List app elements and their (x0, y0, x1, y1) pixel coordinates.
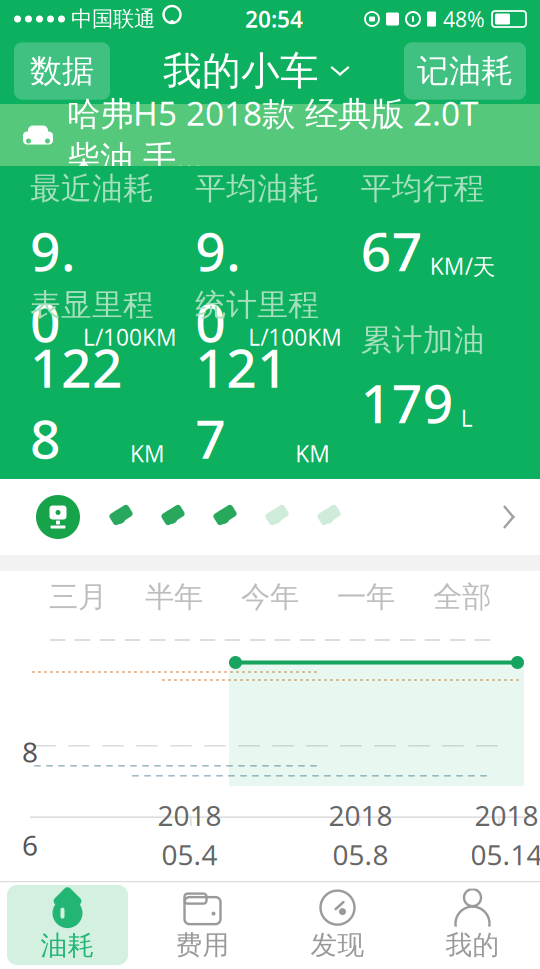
staticText: 半年 (145, 579, 203, 615)
staticText: 最近油耗 (30, 170, 154, 207)
staticText: 8 (22, 733, 38, 770)
staticText: 48% (443, 5, 485, 33)
staticText: 我的 (445, 929, 499, 961)
staticText: 05.4 (161, 836, 217, 873)
staticText: KM/天 (430, 251, 496, 281)
staticText: 67 (361, 215, 423, 286)
staticText: 2018 (328, 797, 392, 834)
staticText: 6 (22, 826, 38, 863)
staticText: 累计加油 (361, 321, 485, 359)
staticText: 平均油耗 (195, 170, 319, 207)
staticText: L/100KM (248, 322, 342, 352)
staticText: 2018 (157, 797, 221, 834)
staticText: 全部 (433, 579, 491, 615)
button[interactable]: 哈弗H5 2018款 经典版 2.0T 柴油 手… (0, 104, 540, 166)
staticText: 9.0 (195, 215, 241, 357)
staticText: 中国联通 (71, 6, 155, 32)
button[interactable]: 我的小车 (163, 47, 351, 95)
button[interactable]: 发现 (270, 885, 405, 965)
staticText: 油耗 (40, 929, 94, 962)
button[interactable] (0, 479, 540, 555)
staticText: 05.8 (332, 836, 388, 873)
button[interactable]: 半年 (126, 571, 222, 623)
staticText: 一年 (337, 579, 395, 615)
button[interactable]: 一年 (318, 571, 414, 623)
staticText: L/100KM (83, 322, 177, 352)
staticText: 1228 (30, 332, 123, 473)
button[interactable]: 数据 (14, 42, 110, 100)
staticText: 统计里程 (195, 286, 319, 324)
staticText: 今年 (241, 579, 299, 615)
staticText: 哈弗H5 2018款 经典版 2.0T 柴油 手… (67, 91, 479, 179)
button[interactable]: 油耗 (0, 881, 135, 969)
button[interactable]: 今年 (222, 571, 318, 623)
staticText: L (461, 403, 473, 433)
button[interactable]: 全部 (414, 571, 510, 623)
staticText: 2018 (474, 797, 538, 834)
staticText: 三月 (49, 579, 107, 615)
button[interactable]: 记油耗 (404, 42, 526, 100)
staticText: 1217 (195, 332, 288, 473)
staticText: 平均行程 (361, 170, 485, 207)
staticText: 05.14 (470, 836, 540, 873)
button[interactable]: 三月 (30, 571, 126, 623)
staticText: 179 (361, 367, 454, 438)
button[interactable]: 我的 (405, 885, 540, 965)
staticText: 费用 (175, 929, 229, 961)
staticText: KM (295, 438, 330, 468)
staticText: 20:54 (245, 4, 303, 34)
staticText: 表显里程 (30, 286, 154, 324)
staticText: KM (130, 438, 165, 468)
staticText: 数据 (30, 51, 94, 91)
staticText: 发现 (310, 929, 364, 961)
staticText: 记油耗 (417, 51, 513, 91)
staticText: 9.0 (30, 215, 76, 357)
staticText: 我的小车 (163, 47, 319, 95)
button[interactable]: 费用 (135, 885, 270, 965)
